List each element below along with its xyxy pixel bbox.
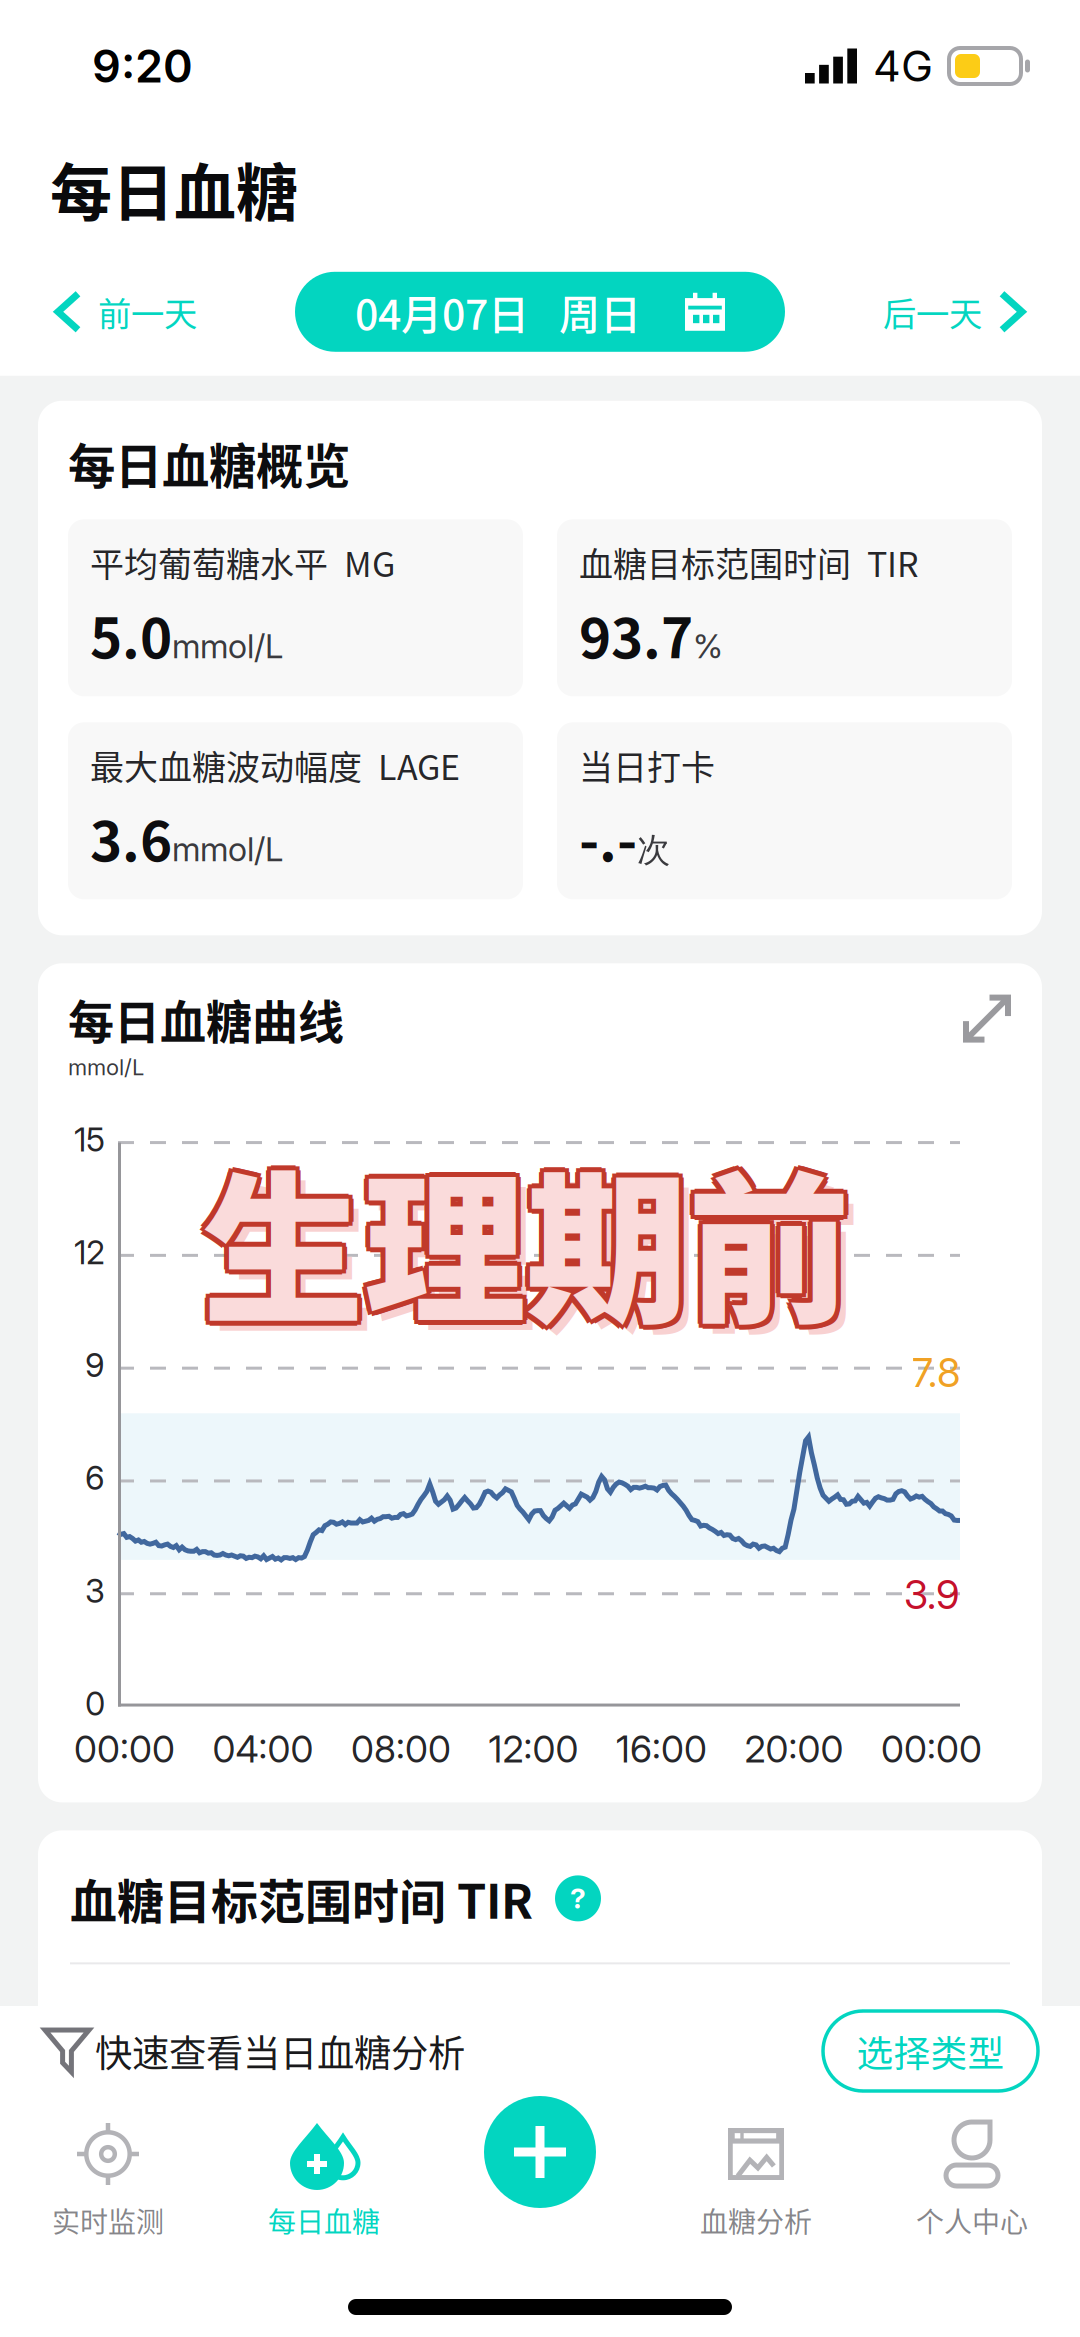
staticText: 前一天 xyxy=(98,288,197,336)
staticText: 00:00 xyxy=(881,1726,982,1771)
staticText: 93.7 xyxy=(579,595,693,674)
staticText: mmol/L xyxy=(172,626,283,666)
staticText: 08:00 xyxy=(351,1726,451,1771)
staticText: 生理期前 xyxy=(197,1122,845,1356)
button[interactable]: 选择类型 xyxy=(823,2011,1038,2091)
button[interactable]: 每日血糖 xyxy=(216,2096,432,2260)
staticText: 平均葡萄糖水平 MG xyxy=(90,538,395,587)
staticText: 3.9 xyxy=(904,1570,960,1618)
staticText: 每日血糖 xyxy=(50,144,298,234)
staticText: 3.6 xyxy=(90,798,172,877)
button[interactable]: 前一天 xyxy=(42,270,213,354)
staticText: 生理期前 xyxy=(206,1126,854,1360)
staticText: 每日血糖曲线 xyxy=(68,985,344,1052)
staticText: 生理期前 xyxy=(212,1132,860,1366)
staticText: 12 xyxy=(74,1233,105,1272)
staticText: 16:00 xyxy=(616,1726,707,1771)
staticText: mmol/L xyxy=(68,1054,144,1080)
button[interactable]: 后一天 xyxy=(867,270,1038,354)
staticText: 生理期前 xyxy=(198,1118,846,1352)
button[interactable]: Expand chart xyxy=(956,988,1018,1050)
staticText: 次 xyxy=(637,829,670,871)
staticText: 9 xyxy=(85,1345,105,1385)
staticText: 生理期前 xyxy=(198,1126,846,1360)
staticText: 实时监测 xyxy=(52,2200,164,2240)
staticText: 5.0 xyxy=(90,595,172,674)
staticText: % xyxy=(693,626,723,666)
staticText: 血糖目标范围时间 TIR xyxy=(70,1864,533,1932)
staticText: 7.8 xyxy=(912,1348,960,1397)
button[interactable]: 血糖分析 xyxy=(648,2096,864,2260)
button[interactable]: 个人中心 xyxy=(864,2096,1080,2260)
staticText: 当日打卡 xyxy=(579,741,715,790)
staticText: ? xyxy=(570,1881,586,1915)
staticText: 血糖分析 xyxy=(700,2200,812,2240)
staticText: 高于目标范围 xyxy=(70,2001,298,2056)
staticText: 生理期前 xyxy=(202,1117,850,1351)
staticText: 每日血糖概览 xyxy=(68,429,350,497)
staticText: 最大血糖波动幅度 LAGE xyxy=(90,741,460,790)
staticText: 选择类型 xyxy=(856,2024,1004,2078)
button[interactable]: 快速查看当日血糖分析 xyxy=(45,2010,465,2092)
staticText: 6 xyxy=(85,1458,105,1498)
staticText: 15 xyxy=(74,1120,105,1159)
staticText: 快速查看当日血糖分析 xyxy=(95,2024,465,2078)
staticText: mmol/L xyxy=(172,829,283,869)
staticText: 00:00 xyxy=(74,1726,175,1771)
staticText: 6.3% xyxy=(902,1996,1010,2060)
button[interactable]: 04月07日 xyxy=(295,272,785,352)
staticText: 每日血糖 xyxy=(268,2200,380,2240)
button[interactable]: Add record xyxy=(432,2096,648,2260)
button[interactable]: 实时监测 xyxy=(0,2096,216,2260)
staticText: 12:00 xyxy=(488,1726,578,1771)
staticText: 生理期前 xyxy=(206,1118,854,1352)
staticText: 04:00 xyxy=(212,1726,313,1771)
staticText: 周日 xyxy=(559,282,641,341)
staticText: 生理期前 xyxy=(207,1122,855,1356)
staticText: 生理期前 xyxy=(202,1122,850,1356)
staticText: 20:00 xyxy=(744,1726,843,1771)
staticText: 04月07日 xyxy=(355,282,529,341)
staticText: 9:20 xyxy=(92,39,193,93)
staticText: 后一天 xyxy=(883,288,982,336)
staticText: 3 xyxy=(85,1571,105,1610)
staticText: 血糖目标范围时间 TIR xyxy=(579,538,919,587)
staticText: 个人中心 xyxy=(916,2200,1028,2240)
staticText: 0 xyxy=(85,1684,105,1723)
staticText: 生理期前 xyxy=(202,1127,850,1361)
staticText: -.- xyxy=(579,798,637,877)
staticText: 4G xyxy=(873,40,933,92)
